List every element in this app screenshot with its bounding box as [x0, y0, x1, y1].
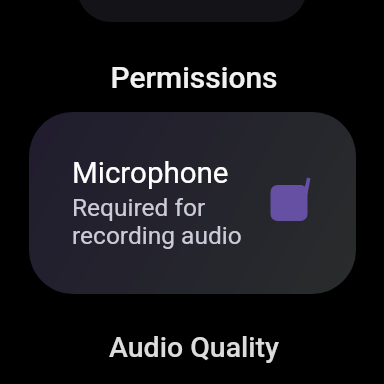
- staticText: Microphone: [72, 156, 229, 191]
- staticText: Permissions: [2, 60, 384, 95]
- other: Microphone permission: [270, 176, 314, 224]
- button[interactable]: Microphone: [29, 112, 356, 294]
- button[interactable]: [77, 0, 307, 22]
- staticText: Required for recording audio: [72, 193, 262, 250]
- staticText: Audio Quality: [2, 331, 384, 364]
